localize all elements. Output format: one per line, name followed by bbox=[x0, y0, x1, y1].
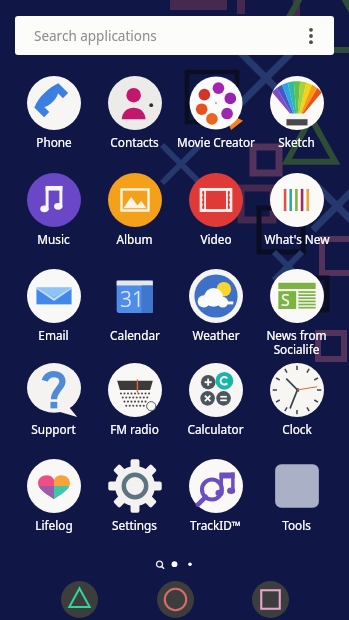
staticText: Email bbox=[38, 327, 69, 343]
staticText: FM radio bbox=[110, 421, 159, 437]
button[interactable]: Music bbox=[13, 173, 94, 247]
button[interactable]: Recents bbox=[252, 581, 289, 618]
staticText: Clock bbox=[282, 421, 312, 437]
button[interactable]: Calculator bbox=[175, 363, 256, 437]
button[interactable]: What's New bbox=[256, 173, 337, 247]
button[interactable]: TrackID™ bbox=[175, 459, 256, 533]
staticText: Tools bbox=[282, 517, 311, 533]
button[interactable]: Album bbox=[94, 173, 175, 247]
staticText: Support bbox=[31, 421, 76, 437]
button[interactable]: More options bbox=[299, 24, 323, 48]
staticText: S bbox=[281, 289, 290, 311]
button[interactable]: Search applications bbox=[15, 16, 334, 55]
staticText: Calendar bbox=[110, 327, 160, 343]
staticText: Album bbox=[116, 231, 153, 247]
button[interactable]: FM radio bbox=[94, 363, 175, 437]
staticText: Sketch bbox=[278, 134, 315, 150]
staticText: What's New bbox=[264, 231, 330, 247]
button[interactable]: Lifelog bbox=[13, 459, 94, 533]
staticText: Movie Creator bbox=[177, 134, 255, 150]
button[interactable]: Sketch bbox=[256, 76, 337, 150]
button[interactable]: 31 bbox=[94, 269, 175, 343]
staticText: Video bbox=[200, 231, 232, 247]
button[interactable]: Contacts bbox=[94, 76, 175, 150]
button[interactable]: Home bbox=[157, 581, 194, 618]
button[interactable]: Movie Creator bbox=[175, 76, 256, 150]
staticText: Contacts bbox=[110, 134, 159, 150]
staticText: Settings bbox=[112, 517, 157, 533]
staticText: News from Socialife bbox=[266, 327, 327, 358]
button[interactable]: S bbox=[256, 269, 337, 358]
staticText: Music bbox=[37, 231, 70, 247]
button[interactable]: Tools bbox=[256, 459, 337, 533]
staticText: Weather bbox=[192, 327, 240, 343]
button[interactable]: Phone bbox=[13, 76, 94, 150]
staticText: TrackID™ bbox=[190, 517, 241, 533]
button[interactable]: Clock bbox=[256, 363, 337, 437]
staticText: 31 bbox=[120, 285, 144, 314]
button[interactable]: Email bbox=[13, 269, 94, 343]
button[interactable]: Video bbox=[175, 173, 256, 247]
button[interactable]: Back bbox=[61, 581, 98, 618]
staticText: Calculator bbox=[187, 421, 244, 437]
button[interactable]: Settings bbox=[94, 459, 175, 533]
staticText: Phone bbox=[36, 134, 72, 150]
button[interactable]: Weather bbox=[175, 269, 256, 343]
staticText: Lifelog bbox=[35, 517, 73, 533]
button[interactable]: Support bbox=[13, 363, 94, 437]
staticText: Search applications bbox=[34, 27, 157, 45]
